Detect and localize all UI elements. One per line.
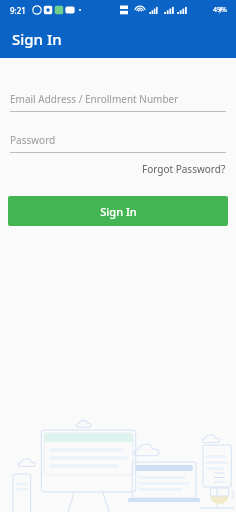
staticText: Password <box>10 133 56 147</box>
staticText: Forgot Password? <box>142 162 226 176</box>
staticText: Sign In <box>100 204 137 219</box>
staticText: 49% <box>213 5 227 15</box>
button[interactable]: Password <box>10 133 226 153</box>
staticText: Email Address / Enrollment Number <box>10 92 179 106</box>
button[interactable]: Email Address / Enrollment Number <box>10 92 226 112</box>
button[interactable]: Sign In <box>8 196 228 226</box>
staticText: Sign In <box>12 29 62 49</box>
staticText: 9:21 <box>10 5 26 16</box>
button[interactable]: Forgot Password? <box>140 159 228 179</box>
